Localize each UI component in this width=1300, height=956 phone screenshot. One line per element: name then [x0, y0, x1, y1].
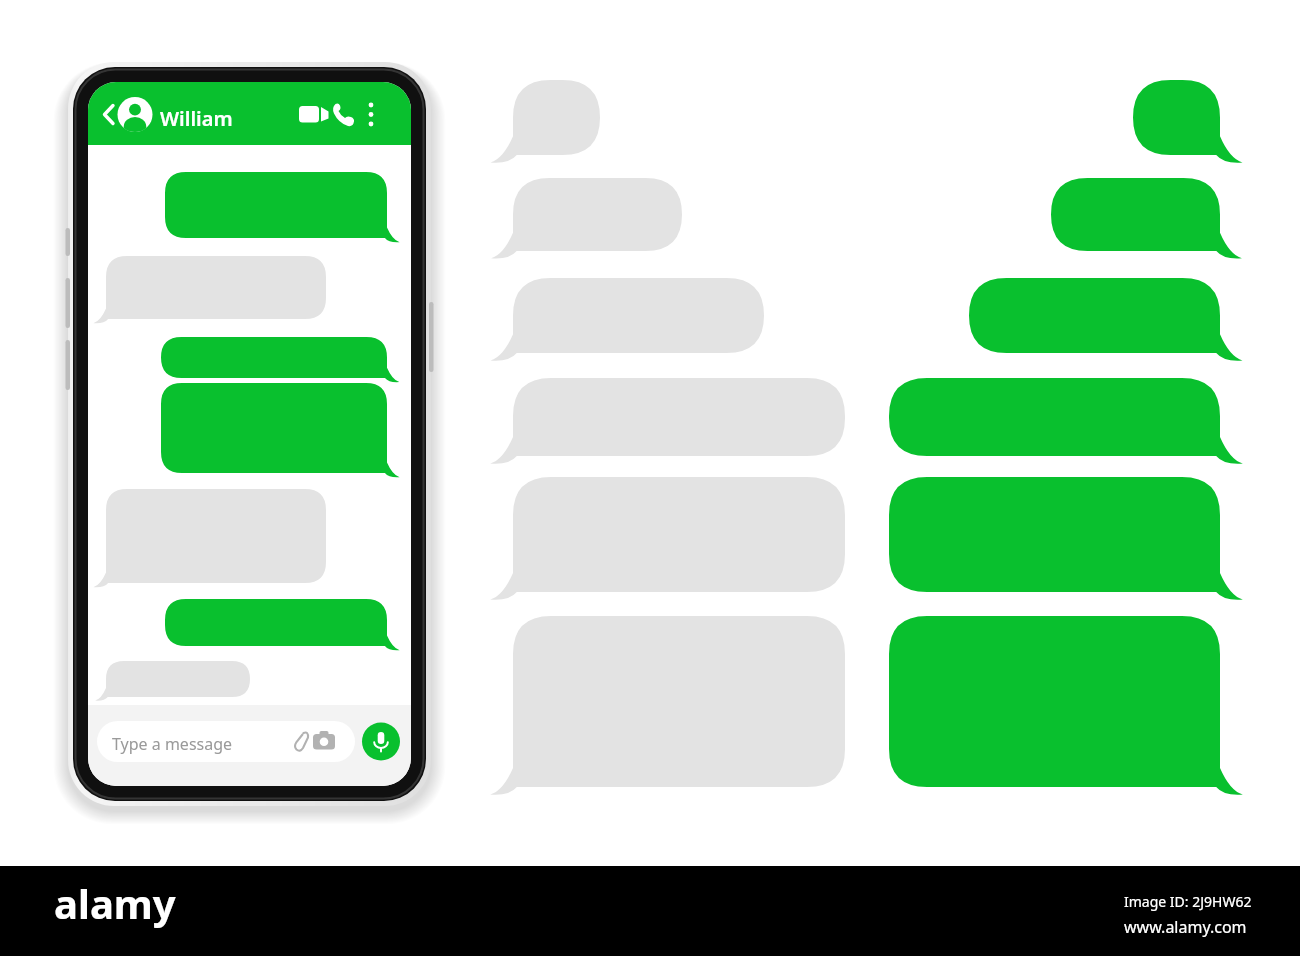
staticText: Image ID: 2J9HW62 [1124, 892, 1252, 911]
button[interactable]: Camera [319, 731, 347, 757]
button[interactable]: Attach file [289, 731, 315, 757]
button[interactable]: Call [337, 102, 369, 134]
button[interactable]: Record voice message [362, 725, 402, 765]
button[interactable]: Back [93, 100, 121, 136]
button[interactable]: Video call [294, 102, 334, 134]
button[interactable]: More options [373, 100, 399, 136]
staticText: Type a message [112, 733, 233, 755]
button[interactable] [97, 724, 355, 765]
staticText: alamy [54, 876, 176, 930]
staticText: www.alamy.com [1124, 916, 1247, 938]
staticText: William [160, 105, 233, 132]
button[interactable] [123, 96, 243, 140]
